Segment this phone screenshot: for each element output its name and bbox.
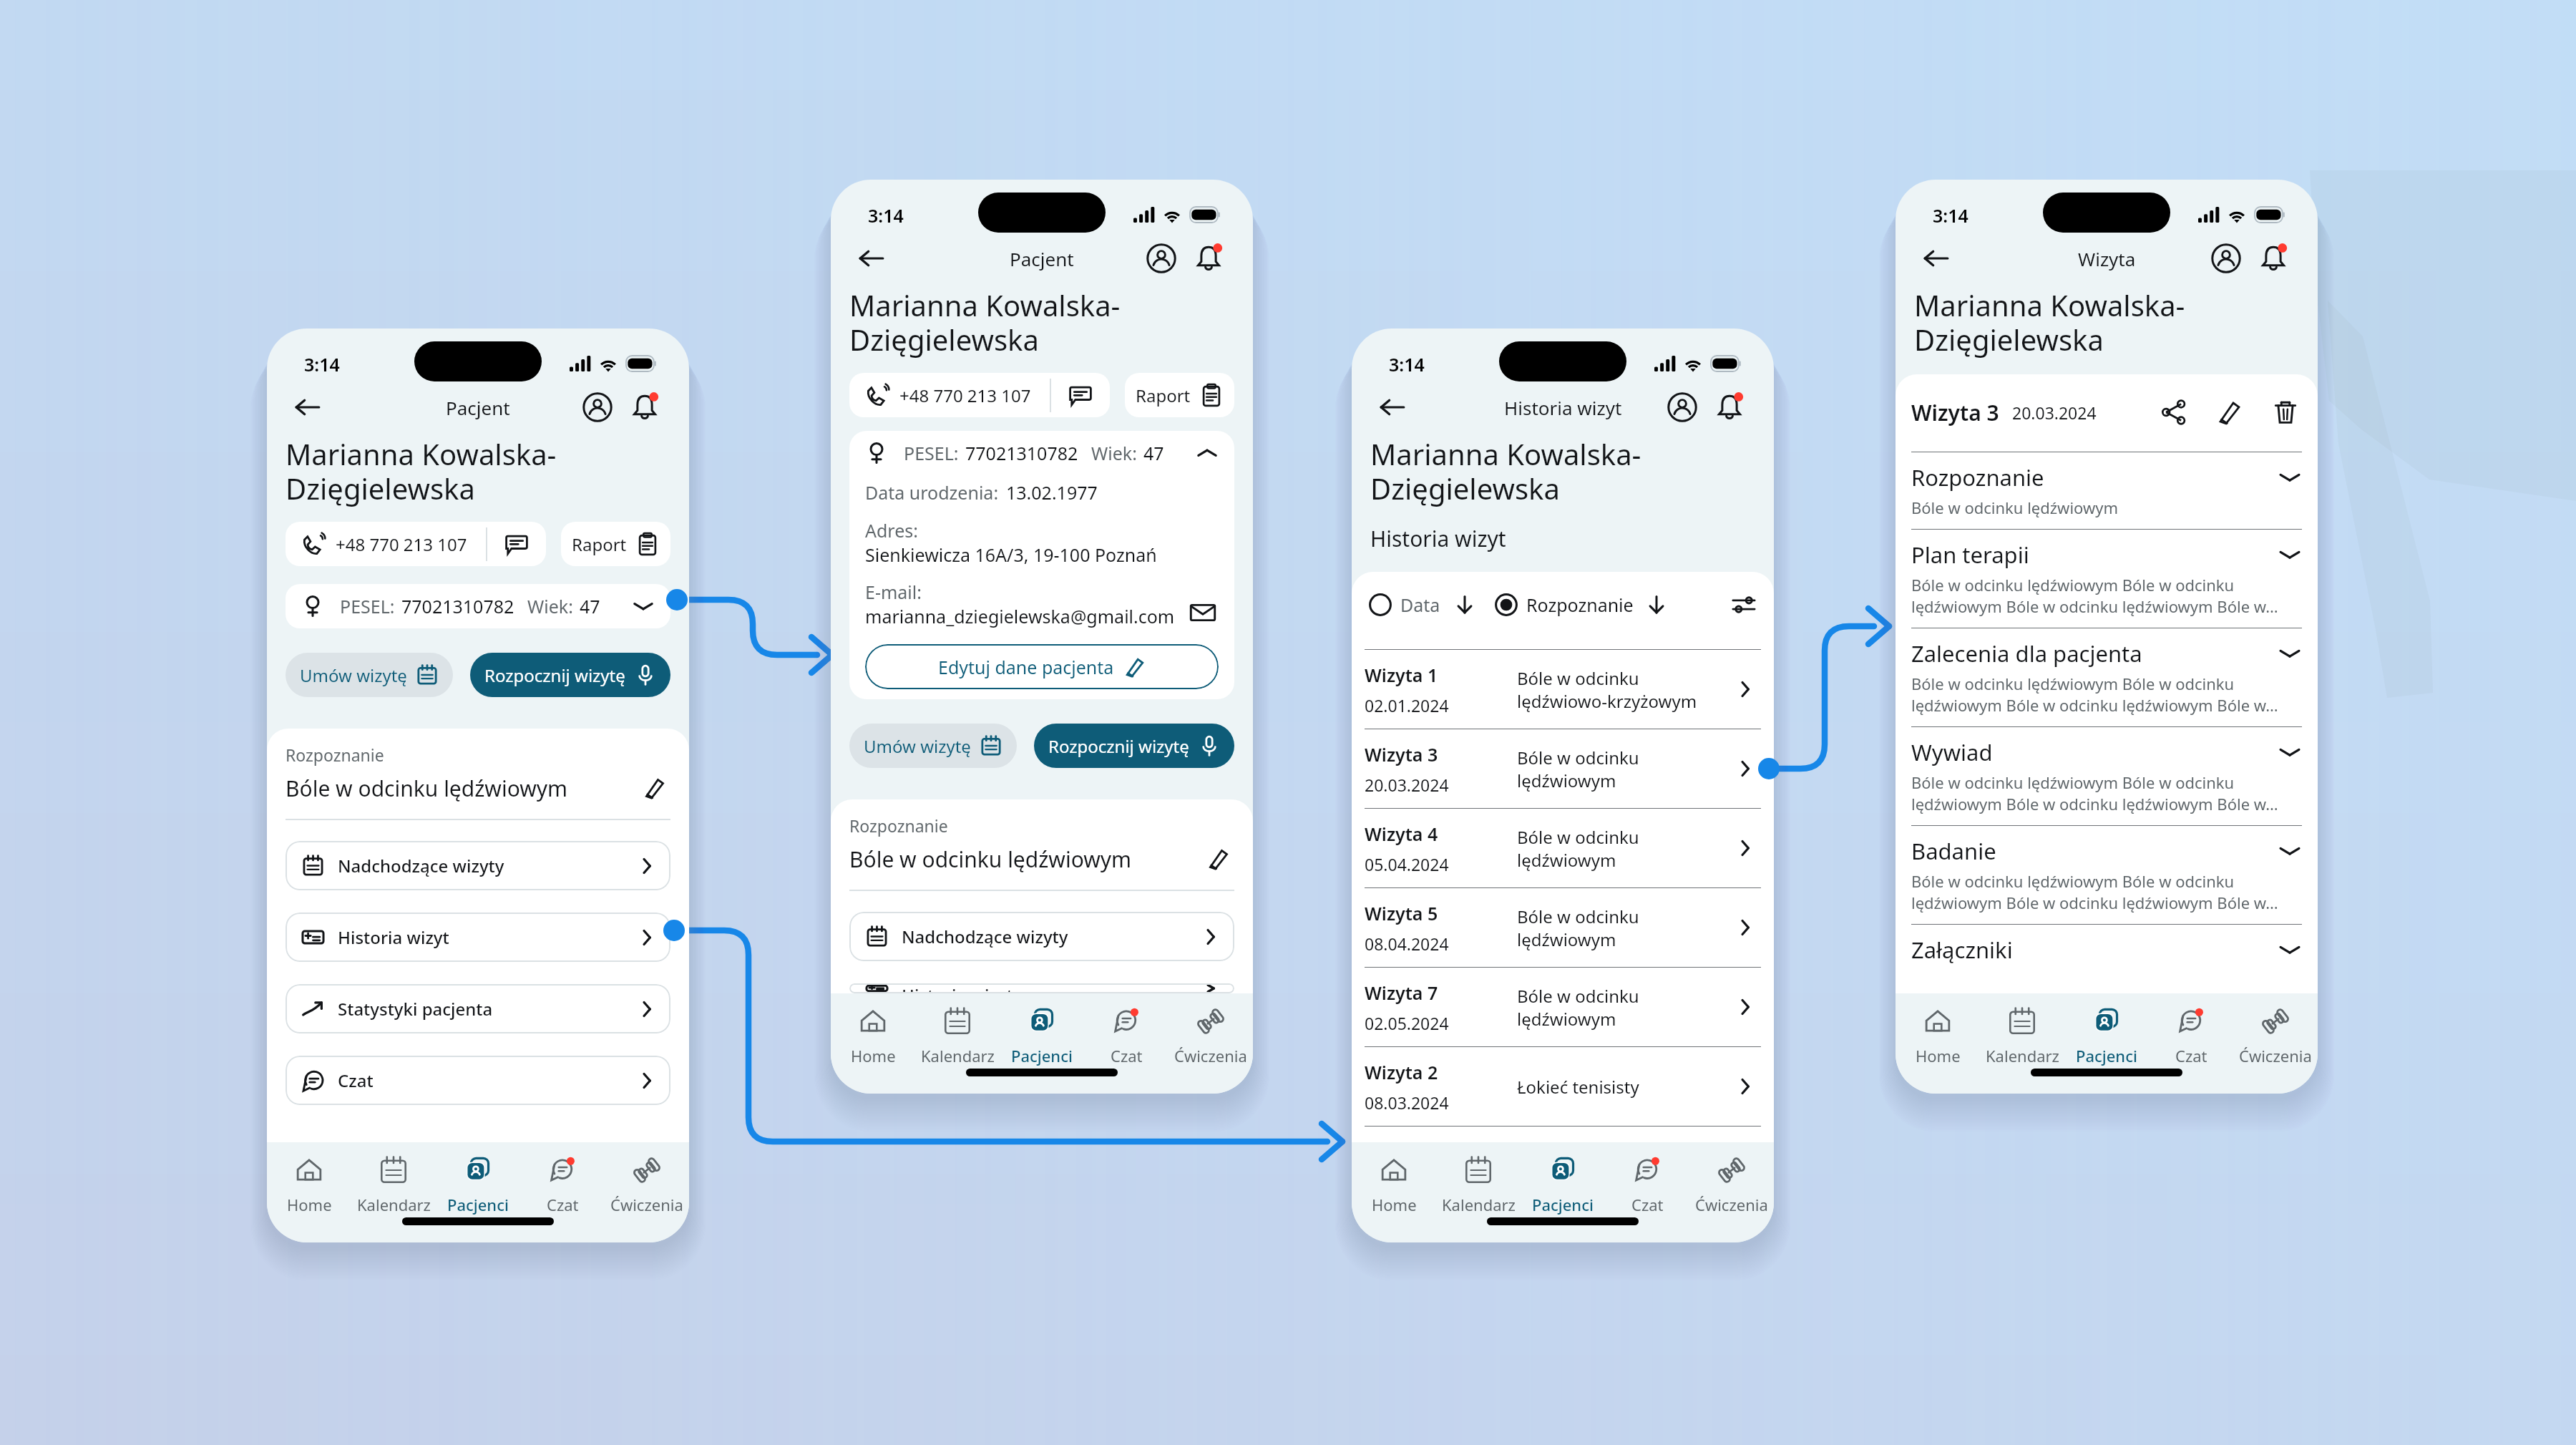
button[interactable]: Umów wizytę (286, 653, 453, 697)
button[interactable]: Statystyki pacjenta (286, 984, 670, 1033)
staticText: Wizyta 1 (1365, 663, 1438, 687)
button[interactable]: Nadchodzące wizyty (286, 841, 670, 890)
button[interactable]: Czat (1084, 1005, 1169, 1066)
button[interactable]: Ćwiczenia (1689, 1154, 1774, 1215)
button[interactable]: Wywiad (1911, 737, 2302, 767)
button[interactable]: Message (1051, 373, 1110, 417)
button[interactable]: Załączniki (1911, 935, 2302, 965)
button[interactable]: Badanie (1911, 836, 2302, 866)
button[interactable]: Czat (1605, 1154, 1689, 1215)
button[interactable]: PESEL: (286, 584, 670, 628)
button[interactable]: Email (1187, 597, 1219, 628)
button[interactable]: Ćwiczenia (1169, 1005, 1253, 1066)
button[interactable]: Home (1352, 1154, 1436, 1215)
button[interactable]: Rozpocznij wizytę (1034, 724, 1234, 768)
button[interactable]: Delete (2269, 396, 2302, 429)
button[interactable]: Edit diagnosis (1203, 843, 1234, 875)
staticText: Ćwiczenia (1695, 1194, 1768, 1215)
button[interactable]: Nadchodzące wizyty (849, 912, 1234, 961)
staticText: Marianna Kowalska- Dzięgielewska (286, 434, 557, 508)
button[interactable]: Home (831, 1005, 915, 1066)
staticText: 13.02.1977 (1006, 480, 1098, 505)
button[interactable]: Pacjenci (1521, 1154, 1605, 1215)
button[interactable]: Zalecenia dla pacjenta (1911, 638, 2302, 668)
button[interactable]: Back (1920, 242, 1953, 275)
button[interactable]: Notifications (2256, 241, 2290, 276)
button[interactable]: Czat (520, 1154, 605, 1215)
staticText: Home (1372, 1194, 1417, 1215)
staticText: Historia wizyt (1370, 524, 1506, 553)
button[interactable]: Pacjenci (436, 1154, 520, 1215)
button[interactable]: Home (267, 1154, 351, 1215)
button[interactable]: +48 770 213 107 (286, 522, 486, 566)
staticText: 47 (1143, 441, 1164, 465)
button[interactable]: Back (291, 391, 324, 424)
staticText: Ćwiczenia (1174, 1045, 1247, 1066)
staticText: Wizyta 2 (1365, 1060, 1438, 1084)
button[interactable]: Edit (2213, 396, 2246, 429)
staticText: Rozpocznij wizytę (1048, 734, 1189, 758)
button[interactable]: Account (580, 390, 615, 424)
button[interactable]: Historia wizyt (849, 983, 1234, 993)
button[interactable]: Wizyta 3 (1365, 729, 1761, 808)
button[interactable]: Plan terapii (1911, 540, 2302, 570)
button[interactable]: Notifications (1191, 241, 1226, 276)
button[interactable]: Notifications (628, 390, 662, 424)
button[interactable]: Filters (1731, 592, 1757, 618)
button[interactable]: Raport (561, 522, 670, 566)
button[interactable]: Ćwiczenia (605, 1154, 689, 1215)
staticText: Pacjent (446, 395, 510, 420)
button[interactable]: PESEL: (865, 441, 1219, 465)
staticText: Rozpoznanie (1526, 593, 1634, 617)
button[interactable]: Data (1369, 593, 1440, 617)
button[interactable]: Sort by date (1453, 593, 1476, 616)
button[interactable]: Rozpocznij wizytę (470, 653, 670, 697)
staticText: +48 770 213 107 (899, 384, 1031, 407)
button[interactable]: Ćwiczenia (2233, 1005, 2318, 1066)
staticText: Wizyta 5 (1365, 901, 1438, 925)
button[interactable]: Wizyta 5 (1365, 888, 1761, 967)
button[interactable]: Rozpoznanie (1495, 593, 1634, 617)
button[interactable]: Historia wizyt (286, 913, 670, 962)
button[interactable]: Rozpoznanie (1911, 462, 2302, 492)
button[interactable]: Account (2209, 241, 2243, 276)
button[interactable]: Edytuj dane pacjenta (865, 644, 1219, 689)
staticText: Bóle w odcinku lędźwiowym (1517, 825, 1729, 872)
button[interactable]: Czat (286, 1056, 670, 1105)
staticText: Raport (1136, 384, 1191, 407)
button[interactable]: Home (1896, 1005, 1980, 1066)
staticText: Nadchodzące wizyty (338, 854, 639, 877)
button[interactable]: Kalendarz (1980, 1005, 2064, 1066)
staticText: 20.03.2024 (1365, 774, 1449, 796)
button[interactable]: Sort by diagnosis (1645, 593, 1668, 616)
button[interactable]: Wizyta 7 (1365, 968, 1761, 1046)
button[interactable]: Raport (1125, 373, 1234, 417)
button[interactable]: Kalendarz (915, 1005, 1000, 1066)
button[interactable]: Wizyta 2 (1365, 1047, 1761, 1126)
staticText: Historia wizyt (902, 983, 1203, 993)
button[interactable]: Message (487, 522, 546, 566)
button[interactable]: Kalendarz (1436, 1154, 1521, 1215)
button[interactable]: Wizyta 4 (1365, 809, 1761, 887)
button[interactable]: Czat (2149, 1005, 2233, 1066)
button[interactable]: Pacjenci (1000, 1005, 1084, 1066)
staticText: Umów wizytę (864, 734, 971, 758)
staticText: Wiek: (1091, 441, 1137, 465)
button[interactable]: Edit diagnosis (639, 772, 670, 804)
button[interactable]: Umów wizytę (849, 724, 1017, 768)
button[interactable]: Wizyta 1 (1365, 650, 1761, 729)
button[interactable]: Kalendarz (351, 1154, 436, 1215)
button[interactable]: Pacjenci (2064, 1005, 2149, 1066)
staticText: Bóle w odcinku lędźwiowym (1517, 746, 1729, 792)
staticText: E-mail: (865, 580, 922, 604)
button[interactable]: Share (2157, 396, 2190, 429)
button[interactable]: Account (1665, 390, 1699, 424)
staticText: Wizyta 4 (1365, 822, 1438, 846)
staticText: marianna_dziegielewska@gmail.com (865, 604, 1175, 628)
button[interactable]: +48 770 213 107 (849, 373, 1050, 417)
button[interactable]: Back (855, 242, 888, 275)
button[interactable]: Account (1144, 241, 1179, 276)
button[interactable]: Back (1376, 391, 1409, 424)
staticText: Raport (572, 532, 627, 556)
button[interactable]: Notifications (1712, 390, 1747, 424)
